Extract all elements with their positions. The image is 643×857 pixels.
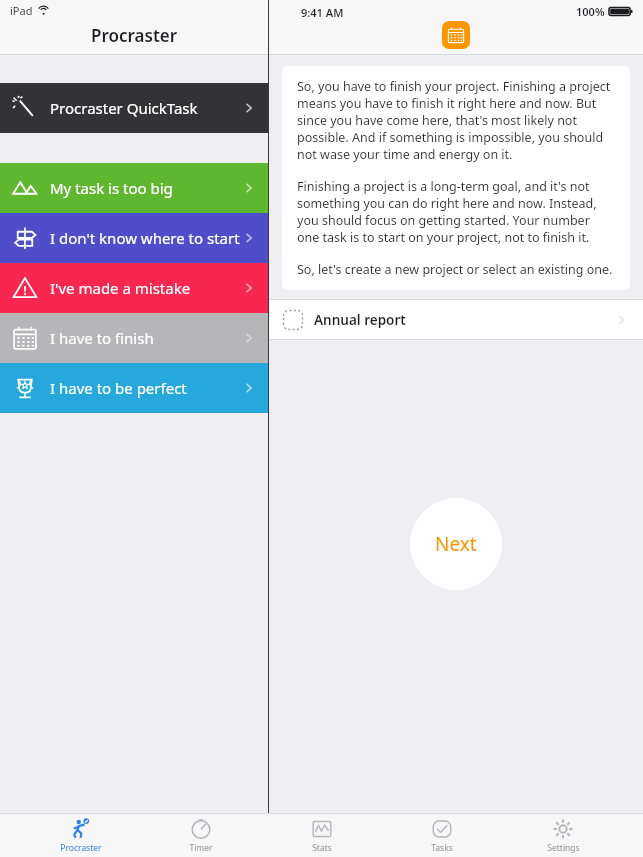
staticText: So, you have to finish your project. Fin… (297, 78, 615, 163)
button[interactable]: Timer (161, 814, 241, 857)
button[interactable]: Annual report (269, 300, 643, 339)
staticText: I don't know where to start (50, 228, 242, 248)
button[interactable]: Stats (282, 814, 362, 857)
staticText: 9:41 AM (301, 5, 344, 20)
staticText: My task is too big (50, 178, 242, 198)
button[interactable]: Tasks (402, 814, 482, 857)
staticText: Finishing a project is a long-term goal,… (297, 178, 615, 246)
button[interactable]: My task is too big (0, 163, 268, 213)
button[interactable]: Procraster (41, 814, 121, 857)
staticText: Next (435, 531, 477, 557)
button[interactable]: Next (410, 498, 502, 590)
staticText: I've made a mistake (50, 278, 242, 298)
staticText: I have to finish (50, 328, 242, 348)
staticText: Procraster (60, 842, 102, 854)
button[interactable]: Procraster QuickTask (0, 83, 268, 133)
staticText: Settings (547, 842, 580, 854)
staticText: iPad (10, 3, 33, 18)
staticText: So, let's create a new project or select… (297, 261, 613, 278)
staticText: Tasks (431, 842, 453, 854)
staticText: Timer (189, 842, 213, 854)
staticText: Annual report (314, 311, 614, 329)
staticText: I have to be perfect (50, 378, 242, 398)
staticText: Stats (312, 842, 332, 854)
staticText: Procraster (91, 24, 178, 47)
button[interactable]: Project calendar (442, 21, 470, 49)
staticText: 100% (576, 4, 605, 19)
button[interactable]: I have to finish (0, 313, 268, 363)
button[interactable]: Settings (523, 814, 603, 857)
button[interactable]: I've made a mistake (0, 263, 268, 313)
button[interactable]: I don't know where to start (0, 213, 268, 263)
staticText: Procraster QuickTask (50, 98, 242, 118)
button[interactable]: I have to be perfect (0, 363, 268, 413)
